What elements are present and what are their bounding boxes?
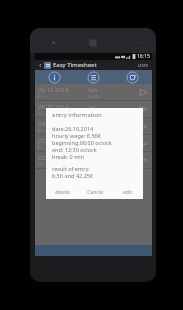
staticText: 22.10.2014 [38,154,69,162]
other: Start [138,87,149,98]
button[interactable]: delete [46,186,79,199]
other: Start [138,121,149,132]
staticText: date:26.10.2014 [52,125,94,132]
button[interactable]: 25.10.2014 [35,101,152,118]
staticText: Sun [88,87,97,94]
staticText: end: 12:30 oclock [52,146,97,153]
staticText: entry information [52,111,102,119]
button[interactable]: LISTS [137,63,150,68]
button[interactable]: Cancel [79,186,111,199]
button[interactable]: 26.10.2014 [35,84,152,101]
staticText: 25.10.2014 [38,103,69,111]
staticText: result of entry: [52,165,90,172]
staticText: 8 h [38,145,44,150]
staticText: 50.10 € [88,111,102,116]
staticText: LISTS [138,63,149,68]
staticText: 23.10.2014 [38,137,69,145]
other: Start [138,155,149,166]
staticText: Sat [88,104,96,111]
staticText: 42.25 € [88,94,102,99]
staticText: Fri [88,121,94,128]
button[interactable]: Refresh [113,70,152,84]
staticText: 42.25 € [88,128,102,133]
staticText: 5 h [38,128,44,133]
staticText: edit [123,189,132,196]
staticText: 6.5h and 42.25€ [52,172,94,179]
staticText: Thu [88,138,97,145]
staticText: Easy Timesheet [53,61,97,69]
staticText: 26.10.2014 [38,86,69,94]
staticText: Cancel [87,189,103,196]
button[interactable]: 24.10.2014 [35,118,152,135]
staticText: 16:15 [137,53,150,60]
staticText: break: 0 min [52,153,85,160]
button[interactable]: edit [111,186,143,199]
button[interactable]: Navigate up [37,62,43,68]
staticText: 7 h [38,111,44,116]
button[interactable]: 23.10.2014 [35,135,152,152]
staticText: 5 h [38,94,44,99]
button[interactable]: List [74,70,113,84]
staticText: 6 h [38,162,44,167]
staticText: hourly wage: 6.56€ [52,132,101,139]
button[interactable]: Information [35,70,74,84]
other: Start [138,104,149,115]
staticText: beginning:06:00 oclock [52,139,112,146]
staticText: 60.00 € [88,145,102,150]
staticText: 24.10.2014 [38,120,69,128]
staticText: delete [55,189,70,196]
other: Start [138,138,149,149]
button[interactable]: 22.10.2014 [35,152,152,169]
